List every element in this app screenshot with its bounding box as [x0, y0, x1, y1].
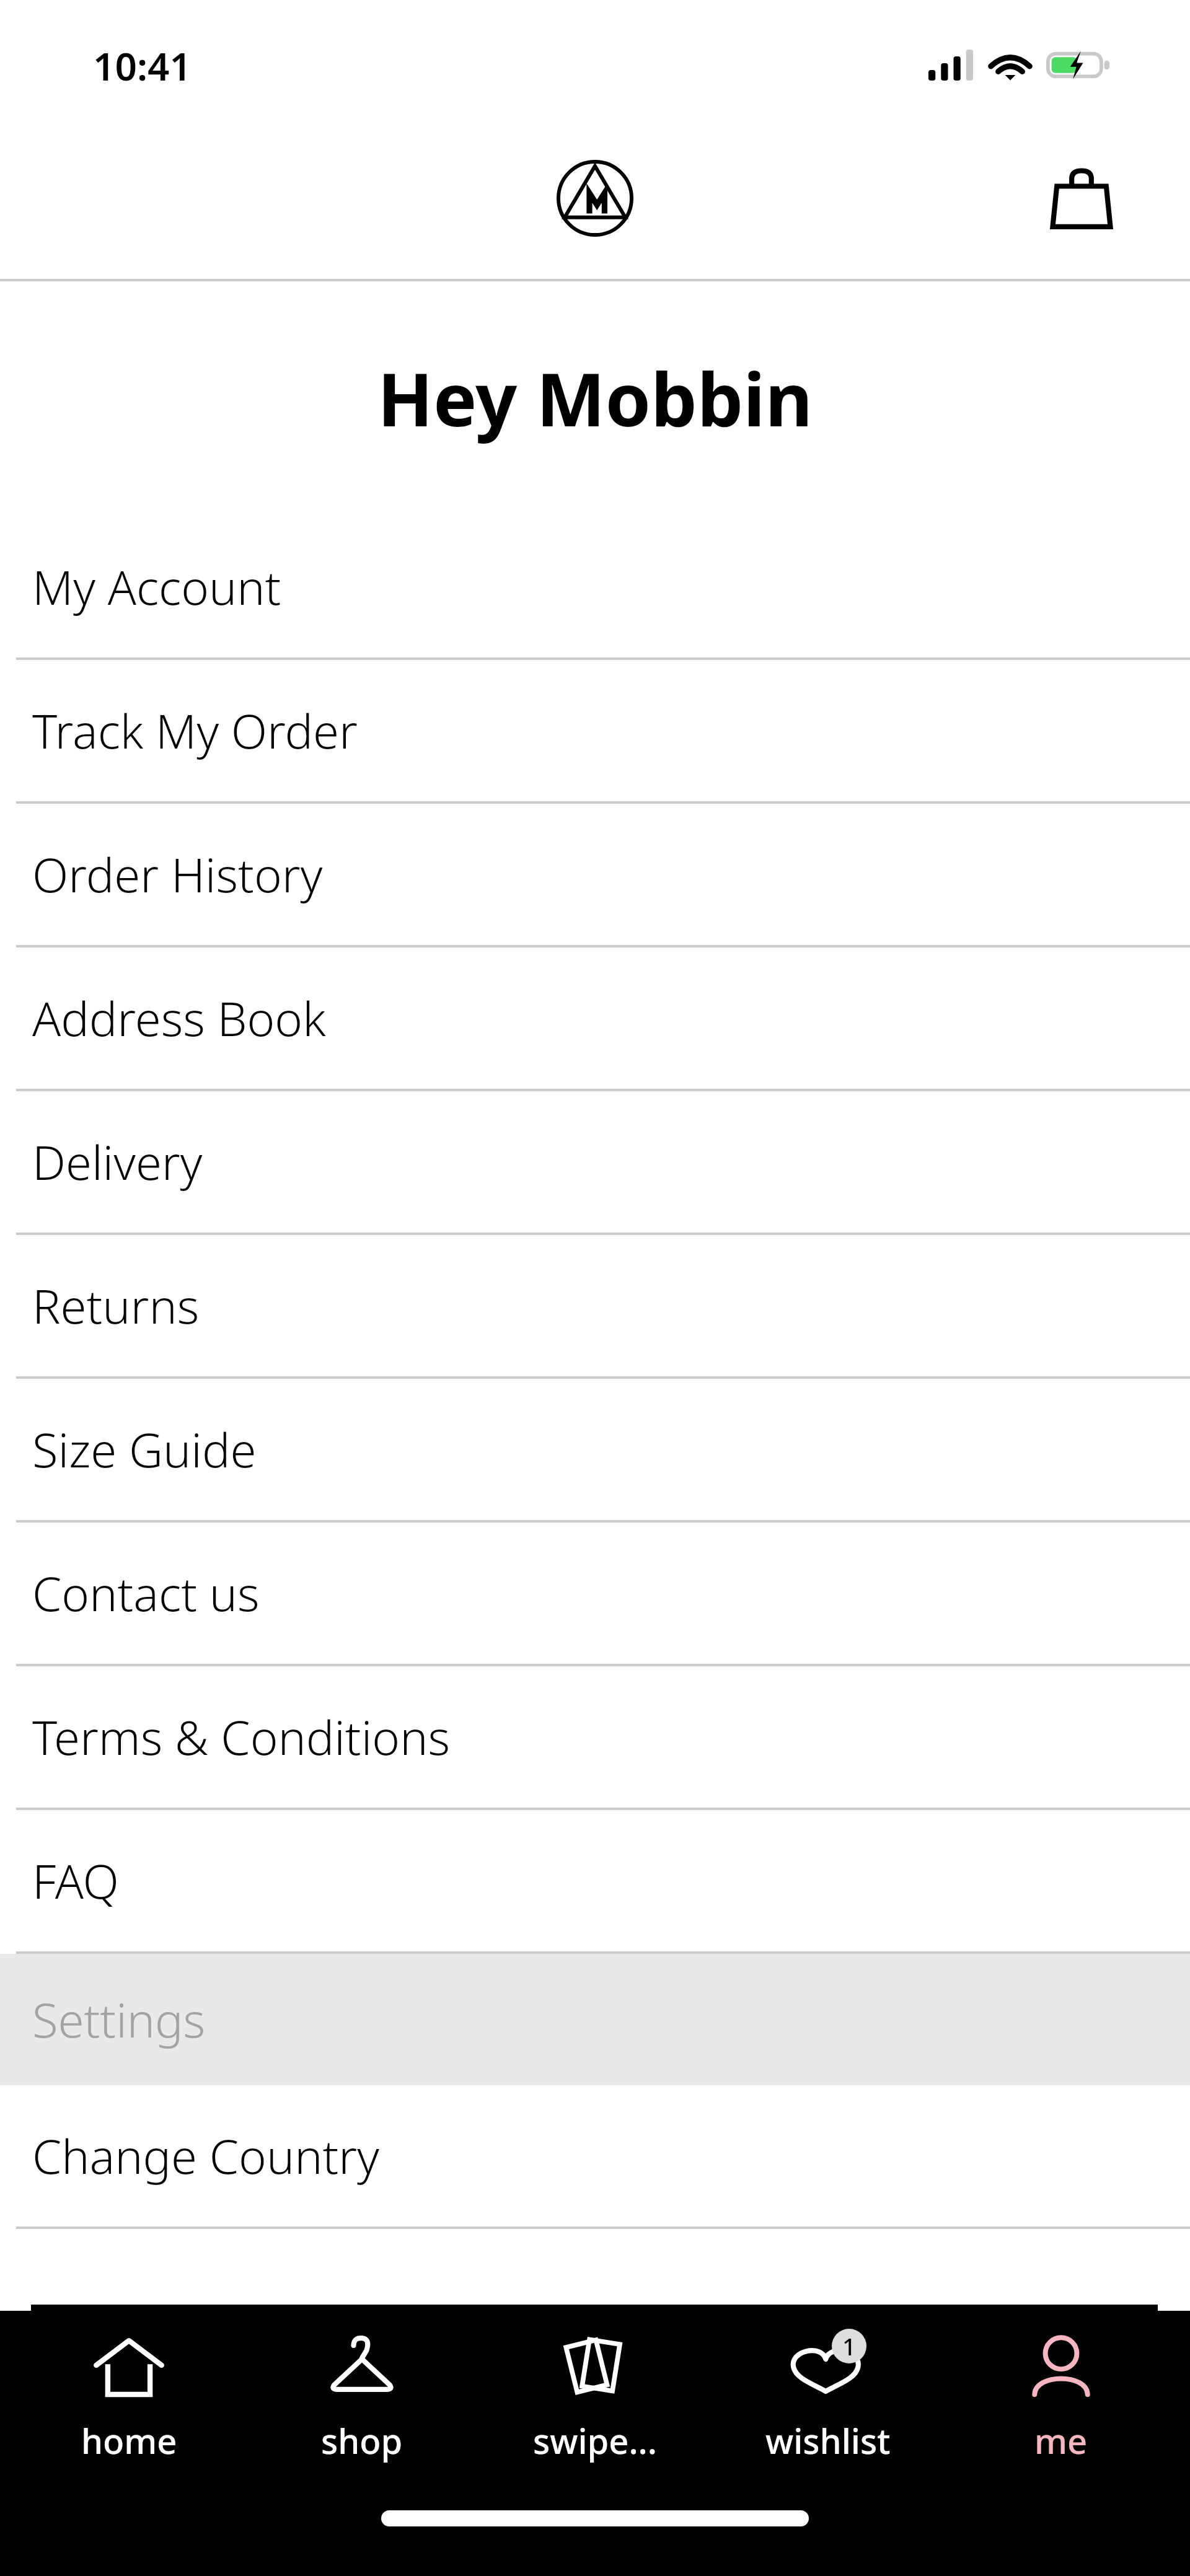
- button[interactable]: Address Book: [0, 947, 1190, 1089]
- button[interactable]: Terms & Conditions: [0, 1666, 1190, 1808]
- staticText: shop: [321, 2417, 403, 2464]
- staticText: 1: [842, 2330, 856, 2362]
- staticText: Order History: [32, 842, 323, 907]
- staticText: Size Guide: [32, 1417, 257, 1482]
- staticText: Address Book: [32, 986, 326, 1050]
- button[interactable]: Home logo: [534, 138, 656, 259]
- button[interactable]: Contact us: [0, 1523, 1190, 1664]
- staticText: home: [81, 2417, 177, 2464]
- staticText: wishlist: [765, 2417, 891, 2464]
- button[interactable]: shop: [258, 2324, 466, 2464]
- staticText: Terms & Conditions: [32, 1705, 450, 1769]
- button[interactable]: Size Guide: [0, 1379, 1190, 1520]
- button[interactable]: Shopping bag: [1035, 152, 1128, 245]
- button[interactable]: swipe...: [491, 2324, 699, 2464]
- staticText: me: [1034, 2417, 1088, 2464]
- button[interactable]: FAQ: [0, 1810, 1190, 1951]
- button[interactable]: Change Country: [0, 2085, 1190, 2227]
- button[interactable]: home: [25, 2324, 233, 2464]
- staticText: Hey Mobbin: [0, 348, 1190, 448]
- staticText: Returns: [32, 1273, 200, 1338]
- button[interactable]: me: [957, 2324, 1165, 2464]
- button[interactable]: Order History: [0, 804, 1190, 945]
- staticText: swipe...: [533, 2417, 658, 2464]
- staticText: Track My Order: [32, 698, 358, 763]
- button[interactable]: Returns: [0, 1235, 1190, 1376]
- staticText: Settings: [32, 1987, 206, 2052]
- staticText: 10:41: [93, 40, 192, 92]
- staticText: My Account: [32, 555, 281, 619]
- button[interactable]: 1: [724, 2324, 932, 2464]
- staticText: Change Country: [32, 2124, 379, 2188]
- button[interactable]: Delivery: [0, 1091, 1190, 1233]
- staticText: FAQ: [32, 1848, 119, 1913]
- button[interactable]: Track My Order: [0, 660, 1190, 801]
- staticText: Contact us: [32, 1561, 260, 1625]
- button[interactable]: My Account: [0, 516, 1190, 657]
- staticText: Delivery: [32, 1130, 203, 1194]
